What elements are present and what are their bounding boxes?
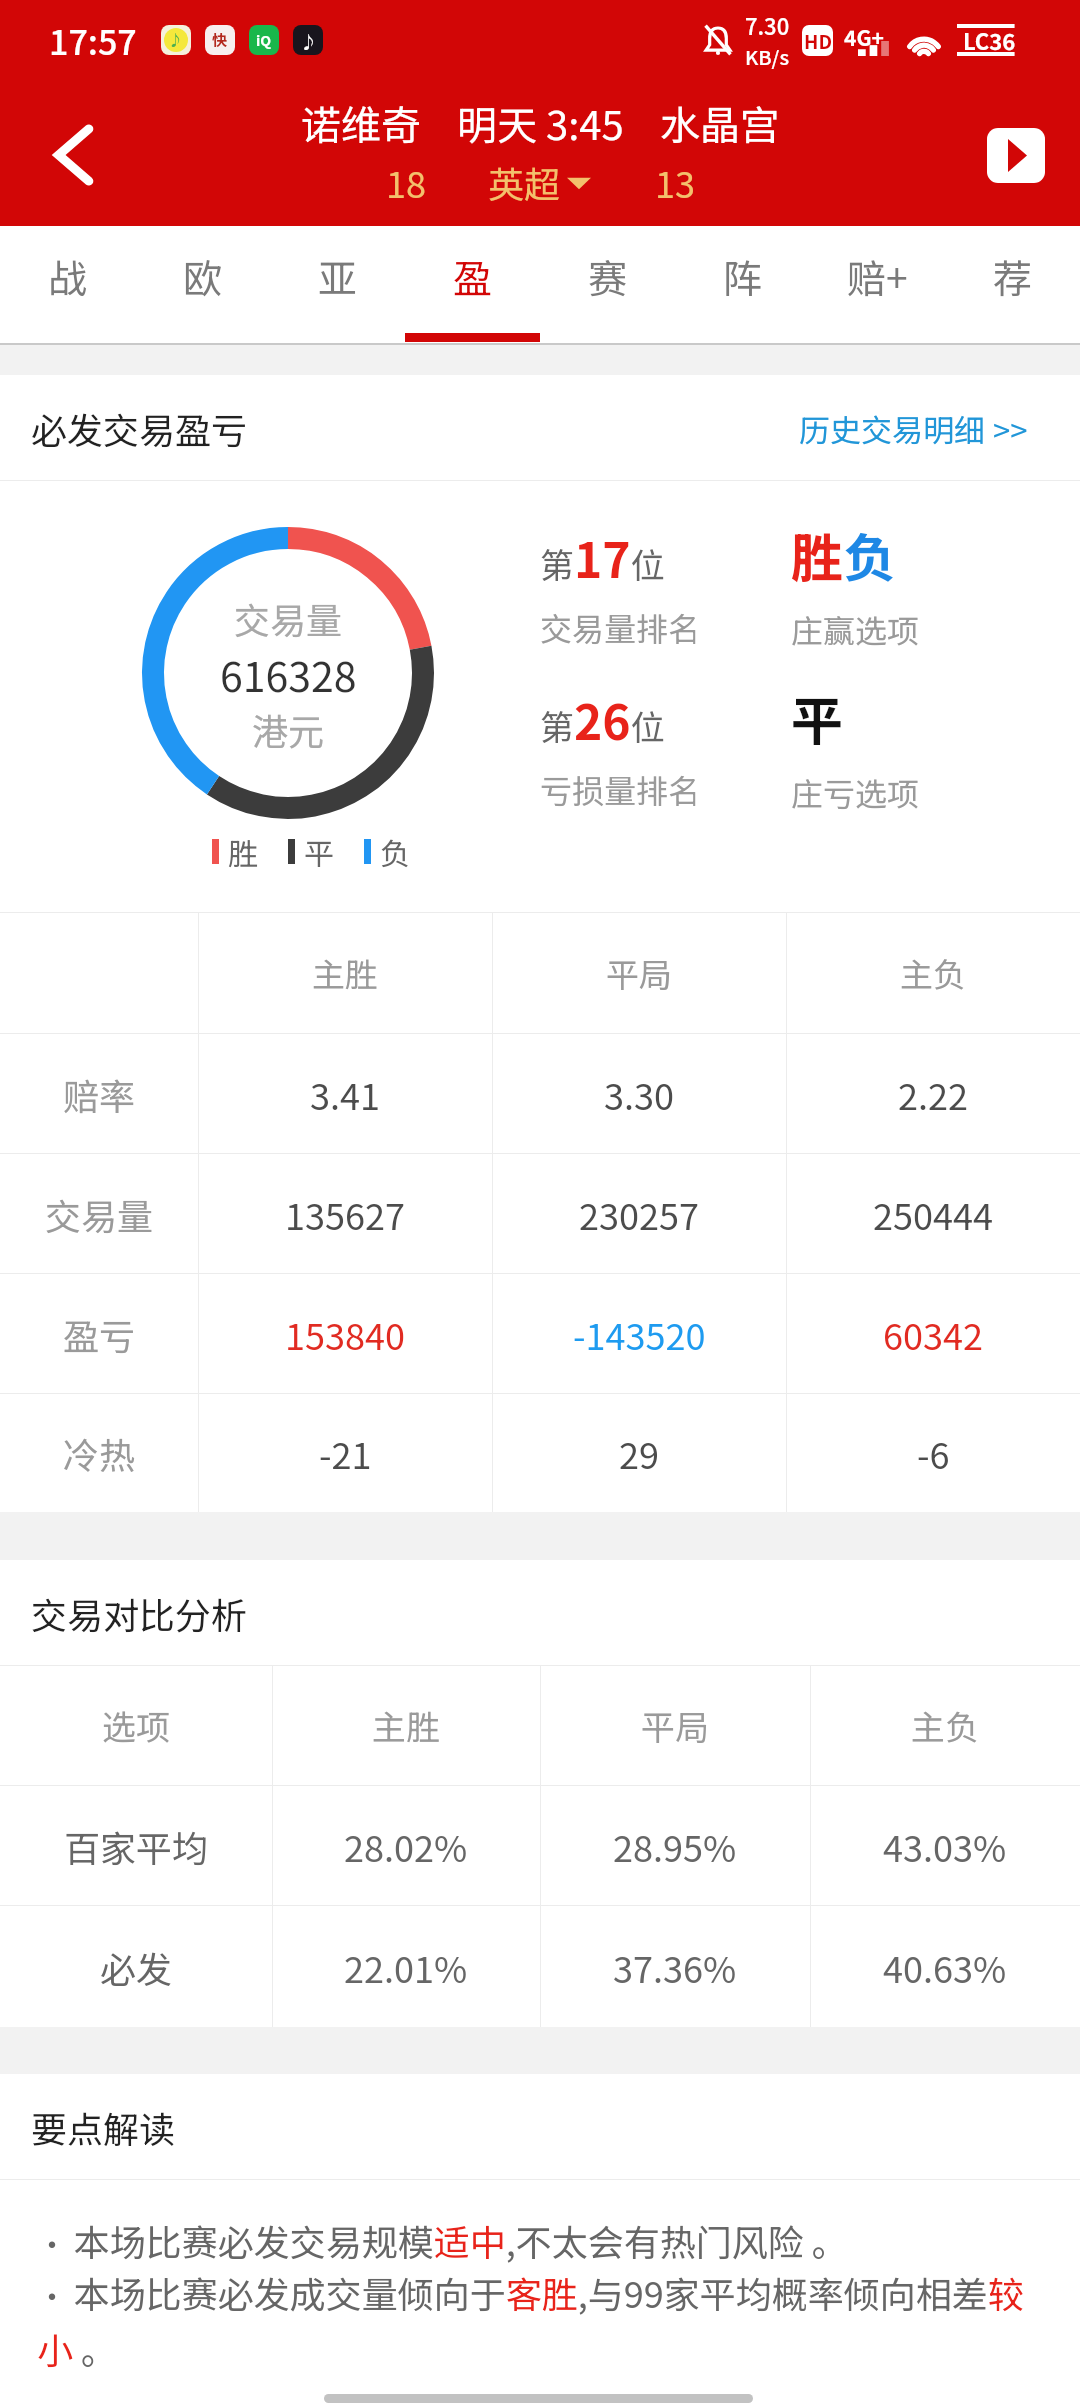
staticText: 18	[386, 156, 426, 208]
staticText: 28.02%	[344, 1820, 468, 1872]
staticText: 亏损量排名	[540, 766, 701, 812]
staticText: 快	[212, 29, 228, 51]
button[interactable]: 阵	[675, 226, 810, 343]
staticText: 庄赢选项	[791, 606, 920, 652]
staticText: 亚	[318, 248, 358, 304]
button[interactable]: 欧	[135, 226, 270, 343]
button[interactable]: 战	[0, 226, 135, 343]
staticText: 庄亏选项	[791, 769, 920, 815]
staticText: 赛	[588, 248, 628, 304]
staticText: 29	[619, 1427, 659, 1479]
button[interactable]: Back	[0, 80, 146, 226]
staticText: 第26位	[540, 684, 665, 754]
staticText: 交易量排名	[540, 604, 701, 650]
staticText: 平局	[606, 949, 672, 997]
staticText: 盈亏	[63, 1308, 136, 1360]
staticText: 平局	[641, 1701, 709, 1750]
staticText: • 本场比赛必发成交量倾向于客胜,与99家平均概率倾向相差较小 。	[37, 2266, 1042, 2374]
staticText: 胜	[228, 830, 258, 873]
staticText: 主胜	[312, 949, 378, 997]
staticText: 荐	[993, 248, 1033, 304]
staticText: 平	[791, 680, 844, 755]
staticText: • 本场比赛必发交易规模适中,不太会有热门风险 。	[37, 2214, 1042, 2266]
staticText: 3.41	[310, 1068, 380, 1120]
staticText: 43.03%	[883, 1820, 1007, 1872]
staticText: 250444	[873, 1188, 993, 1240]
staticText: ♪	[300, 28, 317, 53]
staticText: 28.95%	[613, 1820, 737, 1872]
button[interactable]: 赔+	[810, 226, 945, 343]
staticText: 负	[380, 830, 410, 873]
staticText: 平	[304, 830, 334, 873]
staticText: 必发	[100, 1941, 173, 1993]
staticText: 冷热	[63, 1427, 136, 1479]
staticText: 欧	[183, 248, 223, 304]
staticText: 诺维奇	[301, 94, 421, 152]
button[interactable]: 赛	[540, 226, 675, 343]
staticText: 2.22	[898, 1068, 968, 1120]
staticText: 百家平均	[64, 1820, 209, 1872]
button[interactable]: 荐	[945, 226, 1080, 343]
staticText: 交易量	[45, 1188, 154, 1240]
button[interactable]: 历史交易明细	[781, 375, 1028, 481]
staticText: 22.01%	[344, 1941, 468, 1993]
staticText: 3.30	[604, 1068, 674, 1120]
staticText: 616328	[220, 644, 357, 703]
staticText: >>	[993, 406, 1028, 451]
staticText: 37.36%	[613, 1941, 737, 1993]
staticText: 港元	[252, 703, 325, 755]
staticText: 赔+	[847, 248, 908, 304]
staticText: 交易对比分析	[31, 1587, 248, 1639]
staticText: 40.63%	[883, 1941, 1007, 1993]
staticText: 选项	[102, 1701, 170, 1750]
staticText: -6	[917, 1427, 950, 1479]
staticText: 胜	[791, 517, 844, 592]
staticText: 主负	[900, 949, 966, 997]
staticText: 13	[655, 156, 695, 208]
staticText: 盈	[453, 248, 493, 304]
staticText: 7.30	[745, 9, 790, 41]
staticText: 135627	[285, 1188, 405, 1240]
staticText: HD	[804, 27, 832, 55]
staticText: 60342	[883, 1308, 983, 1360]
staticText: 主负	[911, 1701, 979, 1750]
staticText: 17:57	[49, 16, 137, 65]
staticText: -21	[319, 1427, 372, 1479]
staticText: iQ	[256, 30, 272, 50]
staticText: LC36	[963, 24, 1016, 56]
staticText: 阵	[723, 248, 763, 304]
staticText: 历史交易明细	[799, 406, 985, 451]
staticText: 明天 3:45	[457, 94, 624, 152]
staticText: 第17位	[540, 522, 665, 592]
staticText: 153840	[285, 1308, 405, 1360]
staticText: 水晶宫	[660, 94, 780, 152]
button[interactable]: 盈	[405, 226, 540, 343]
button[interactable]: Play video	[987, 80, 1045, 226]
staticText: 负	[844, 517, 897, 592]
staticText: 230257	[579, 1188, 699, 1240]
staticText: 要点解读	[31, 2101, 176, 2153]
button[interactable]: 亚	[270, 226, 405, 343]
staticText: 战	[48, 248, 88, 304]
staticText: 4G+	[844, 22, 884, 52]
staticText: -143520	[573, 1308, 706, 1360]
staticText: 赔率	[63, 1068, 136, 1120]
staticText: ♪	[168, 29, 184, 51]
staticText: 必发交易盈亏	[31, 402, 248, 454]
staticText: 交易量	[234, 592, 343, 644]
staticText: 主胜	[372, 1701, 440, 1750]
staticText: 英超	[488, 156, 561, 208]
staticText: KB/s	[745, 42, 790, 71]
